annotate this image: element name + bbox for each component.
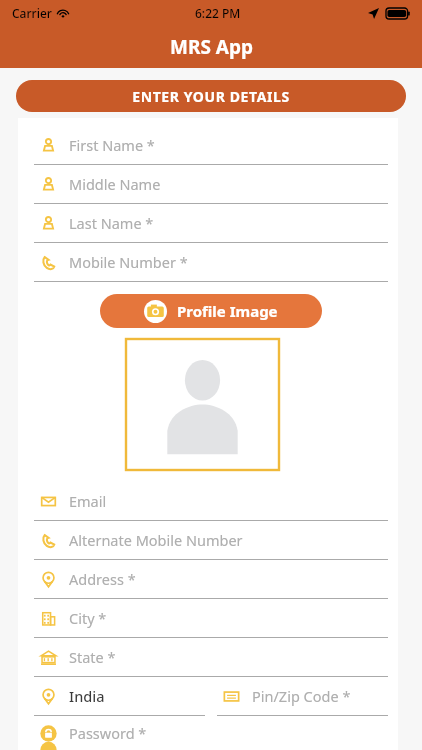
button[interactable]: India [34,677,205,716]
staticText: Address * [69,569,136,589]
staticText: Last Name * [69,213,154,233]
staticText: Pin/Zip Code * [252,686,351,706]
staticText: Middle Name [69,174,161,194]
staticText: ENTER YOUR DETAILS [132,87,290,106]
staticText: Alternate Mobile Number [69,530,243,550]
staticText: 6:22 PM [195,5,241,21]
staticText: City * [69,608,107,628]
staticText: Mobile Number * [69,252,188,272]
button[interactable]: Profile Image [100,294,322,328]
button[interactable]: Mobile Number * [34,243,388,282]
staticText: Password * [69,723,147,743]
button[interactable]: Email [34,482,388,521]
button[interactable]: Last Name * [34,204,388,243]
button[interactable]: Password * [34,716,388,750]
staticText: India [69,686,105,706]
staticText: Carrier [12,5,52,21]
button[interactable]: ENTER YOUR DETAILS [16,80,406,112]
staticText: State * [69,647,116,667]
button[interactable]: Pin/Zip Code * [217,677,388,716]
staticText: Profile Image [177,301,278,321]
button[interactable]: Profile image preview [126,339,279,470]
staticText: First Name * [69,135,155,155]
button[interactable]: Alternate Mobile Number [34,521,388,560]
staticText: Email [69,491,107,511]
button[interactable]: City * [34,599,388,638]
button[interactable]: State * [34,638,388,677]
button[interactable]: First Name * [34,126,388,165]
staticText: MRS App [170,34,253,60]
button[interactable]: Middle Name [34,165,388,204]
button[interactable]: Address * [34,560,388,599]
